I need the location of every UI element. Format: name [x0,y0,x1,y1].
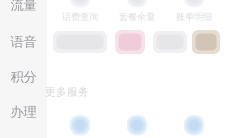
button[interactable]: 在线客服 [53,116,107,138]
button[interactable]: Promotion [115,30,145,54]
button[interactable]: 账单明细 [167,0,221,22]
button[interactable]: 语音 [0,25,47,59]
button[interactable]: 话费查询 [53,0,107,22]
button[interactable]: 办理 [0,95,47,129]
staticText: 账单明细 [176,11,212,23]
button[interactable]: 办理进度 [110,116,164,138]
button[interactable]: Promotion [153,31,187,53]
staticText: 语音 [10,34,36,50]
staticText: 办理 [10,104,36,120]
staticText: 套餐余量 [119,11,155,23]
button[interactable]: 更多服务 [167,116,221,138]
button[interactable]: 套餐余量 [110,0,164,22]
button[interactable]: 流量 [0,0,47,22]
staticText: 流量 [10,0,36,13]
button[interactable]: 积分 [0,60,47,94]
button[interactable]: Promotion [53,31,107,53]
staticText: 更多服务 [45,85,89,98]
staticText: 话费查询 [62,11,98,23]
button[interactable]: Promotion [192,30,220,54]
staticText: 积分 [10,69,36,85]
